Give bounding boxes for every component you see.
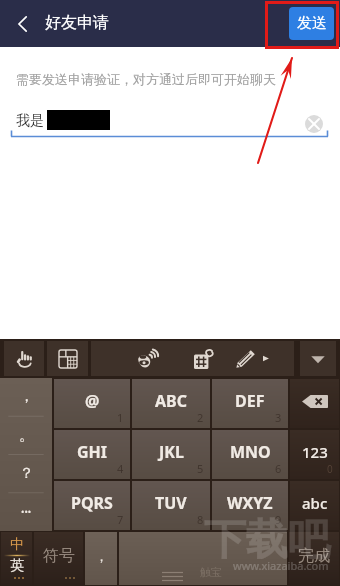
staticText: 下载吧 xyxy=(204,514,330,567)
staticText: 需要发送申请验证，对方通过后即可开始聊天 xyxy=(16,71,276,87)
staticText: 8 xyxy=(197,512,204,527)
button[interactable]: Keyboard layout xyxy=(47,341,88,376)
staticText: ••• xyxy=(21,505,32,517)
staticText: abc xyxy=(302,493,328,513)
staticText: JKL xyxy=(159,441,184,463)
button[interactable]: @ xyxy=(54,379,130,428)
button[interactable]: Edit xyxy=(236,341,288,376)
staticText: 好友申请 xyxy=(45,13,109,33)
staticText: 符号 xyxy=(43,546,75,566)
staticText: ？ xyxy=(19,464,34,483)
staticText: 中 xyxy=(10,536,24,554)
staticText: @ xyxy=(85,390,100,412)
staticText: 9 xyxy=(275,512,282,527)
staticText: ， xyxy=(95,548,108,564)
button[interactable]: 完成 xyxy=(289,532,339,585)
button[interactable]: 。 xyxy=(0,417,52,455)
button[interactable]: ， xyxy=(0,378,52,417)
staticText: ABC xyxy=(155,390,187,412)
staticText: GHI xyxy=(77,441,108,463)
staticText: 123 xyxy=(302,442,328,462)
button[interactable]: ， xyxy=(85,532,117,585)
button[interactable]: Handwriting input xyxy=(4,341,44,376)
button[interactable]: Switch Chinese English xyxy=(1,532,32,585)
staticText: PQRS xyxy=(71,492,113,514)
button[interactable]: PQRS xyxy=(54,481,130,530)
staticText: 触宝 xyxy=(200,565,222,579)
staticText: www.xiazaiba.com xyxy=(233,558,329,573)
button[interactable]: Weibo xyxy=(121,341,175,376)
staticText: 1 xyxy=(117,410,124,425)
staticText: TUV xyxy=(155,492,187,514)
button[interactable]: Clear text xyxy=(305,115,323,133)
staticText: 3 xyxy=(275,410,282,425)
button[interactable]: MNO xyxy=(212,430,288,479)
staticText: 。 xyxy=(19,426,34,445)
button[interactable]: ••• xyxy=(0,493,52,531)
staticText: 0 xyxy=(327,462,333,476)
staticText: 5 xyxy=(197,461,204,476)
button[interactable]: ABC xyxy=(132,379,210,428)
staticText: 4 xyxy=(117,461,124,476)
button[interactable]: Hide keyboard xyxy=(300,341,336,376)
staticText: 7 xyxy=(117,512,124,527)
staticText: 我是 xyxy=(16,112,44,130)
button[interactable]: JKL xyxy=(132,430,210,479)
button[interactable]: ？ xyxy=(0,455,52,493)
staticText: ， xyxy=(19,387,34,406)
button[interactable]: 发送 xyxy=(289,7,334,40)
button[interactable]: GHI xyxy=(54,430,130,479)
button[interactable]: 123 xyxy=(290,430,339,479)
staticText: 发送 xyxy=(297,14,327,33)
staticText: 完成 xyxy=(298,546,330,566)
button[interactable]: Space xyxy=(119,532,287,585)
button[interactable]: abc xyxy=(290,481,339,530)
staticText: 6 xyxy=(275,461,282,476)
button[interactable]: Backspace xyxy=(290,379,339,428)
button[interactable]: 符号 xyxy=(34,532,83,585)
staticText: 英 xyxy=(10,557,24,575)
staticText: DEF xyxy=(235,390,265,412)
staticText: 2 xyxy=(197,410,204,425)
staticText: WXYZ xyxy=(227,492,273,514)
button[interactable]: DEF xyxy=(212,379,288,428)
button[interactable]: TUV xyxy=(132,481,210,530)
button[interactable]: Number pad xyxy=(179,341,229,376)
button[interactable]: Back xyxy=(6,7,40,41)
button[interactable]: WXYZ xyxy=(212,481,288,530)
staticText: MNO xyxy=(230,441,271,463)
